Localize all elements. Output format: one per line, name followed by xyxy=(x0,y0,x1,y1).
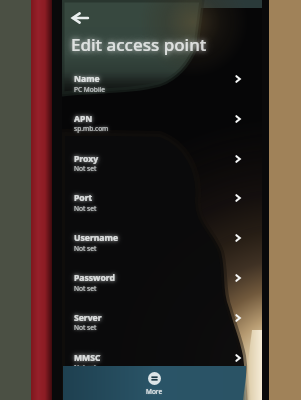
staticText: Not set xyxy=(74,204,97,213)
staticText: Edit access point xyxy=(71,33,207,56)
staticText: Not set xyxy=(74,164,97,173)
button[interactable] xyxy=(62,147,262,187)
button[interactable] xyxy=(62,266,262,306)
staticText: MMSC xyxy=(74,352,101,364)
staticText: Not set xyxy=(74,244,97,253)
staticText: Not set xyxy=(74,244,97,253)
staticText: Not set xyxy=(74,363,97,372)
staticText: Not set xyxy=(74,164,97,173)
staticText: Password xyxy=(74,272,115,284)
staticText: sp.mb.com xyxy=(74,124,109,133)
button[interactable] xyxy=(62,306,262,346)
staticText: Password xyxy=(74,272,115,284)
button[interactable] xyxy=(62,107,262,147)
button[interactable]: Back xyxy=(71,11,89,25)
staticText: Username xyxy=(74,232,119,244)
staticText: More xyxy=(146,387,163,396)
staticText: Name xyxy=(74,73,100,85)
staticText: Server xyxy=(74,312,102,324)
button[interactable]: More xyxy=(63,366,246,400)
staticText: PC Mobile xyxy=(74,85,106,94)
staticText: Port xyxy=(74,192,93,204)
staticText: Port xyxy=(74,192,93,204)
staticText: Not set xyxy=(74,204,97,213)
staticText: Username xyxy=(74,232,119,244)
button[interactable] xyxy=(62,346,262,386)
staticText: Not set xyxy=(74,284,97,293)
staticText: PC Mobile xyxy=(74,85,106,94)
button[interactable] xyxy=(62,67,262,107)
staticText: Not set xyxy=(74,323,97,332)
staticText: sp.mb.com xyxy=(74,124,109,133)
staticText: MMSC xyxy=(74,352,101,364)
button[interactable] xyxy=(62,226,262,266)
staticText: Not set xyxy=(74,363,97,372)
staticText: Edit access point xyxy=(71,33,207,56)
staticText: Proxy xyxy=(74,153,99,165)
staticText: Server xyxy=(74,312,102,324)
button[interactable] xyxy=(62,186,262,226)
staticText: Name xyxy=(74,73,100,85)
staticText: APN xyxy=(74,113,93,125)
staticText: APN xyxy=(74,113,93,125)
staticText: Not set xyxy=(74,323,97,332)
staticText: Not set xyxy=(74,284,97,293)
staticText: Proxy xyxy=(74,153,99,165)
